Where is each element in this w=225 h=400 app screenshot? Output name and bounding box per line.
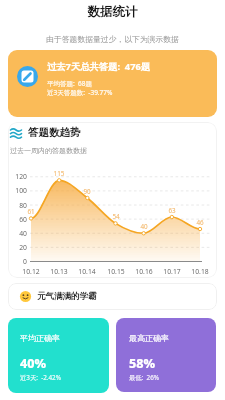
- staticText: 90: [77, 187, 97, 196]
- staticText: 答题数趋势: [28, 126, 81, 139]
- staticText: 近3天答题数: -39.77%: [47, 88, 113, 97]
- staticText: 40: [3, 229, 27, 238]
- staticText: 10.13: [47, 267, 71, 276]
- staticText: 10.16: [132, 267, 156, 276]
- staticText: 63: [162, 206, 182, 215]
- staticText: 10.14: [75, 267, 99, 276]
- staticText: 10.15: [104, 267, 128, 276]
- staticText: 过去一周内的答题数数据: [10, 146, 87, 155]
- staticText: 61: [21, 207, 41, 216]
- staticText: 80: [3, 201, 27, 210]
- staticText: 最低: 26%: [129, 373, 159, 382]
- staticText: 平均正确率: [20, 333, 60, 343]
- button[interactable]: [8, 318, 109, 393]
- staticText: 46: [190, 218, 210, 227]
- staticText: 58%: [129, 355, 155, 372]
- staticText: 0: [3, 257, 27, 266]
- staticText: 115: [49, 169, 69, 178]
- staticText: 元气满满的学霸: [37, 291, 97, 302]
- staticText: 10.12: [19, 267, 43, 276]
- staticText: 最高正确率: [129, 333, 169, 343]
- staticText: 54: [106, 212, 126, 221]
- staticText: 近3天: -2.42%: [20, 373, 61, 382]
- staticText: 20: [3, 243, 27, 252]
- staticText: 60: [3, 215, 27, 224]
- button[interactable]: [8, 50, 217, 117]
- staticText: 10.18: [188, 267, 212, 276]
- staticText: 40%: [20, 355, 46, 372]
- staticText: 120: [3, 172, 27, 181]
- staticText: 由于答题数据量过少，以下为演示数据: [0, 34, 225, 44]
- button[interactable]: [8, 283, 217, 310]
- staticText: 100: [3, 186, 27, 195]
- staticText: 10.17: [160, 267, 184, 276]
- staticText: 数据统计: [0, 4, 225, 20]
- button[interactable]: [116, 318, 216, 392]
- staticText: 平均答题: 68题: [47, 79, 93, 88]
- staticText: 过去7天总共答题: 476题: [47, 60, 151, 73]
- staticText: 40: [134, 222, 154, 231]
